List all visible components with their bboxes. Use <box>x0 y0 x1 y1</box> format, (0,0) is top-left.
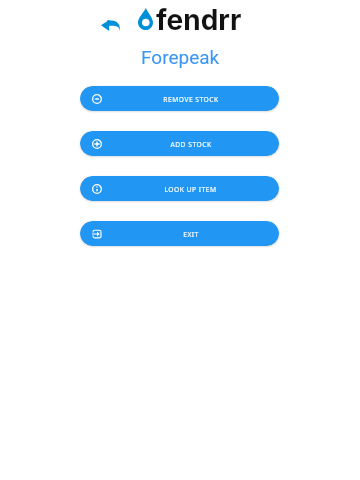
button[interactable]: ADD STOCK <box>80 131 279 156</box>
button[interactable]: EXIT <box>80 221 279 246</box>
staticText: Forepeak <box>141 46 220 68</box>
button[interactable]: Back <box>96 16 124 35</box>
staticText: EXIT <box>183 230 199 239</box>
staticText: fendrr <box>156 3 242 37</box>
staticText: LOOK UP ITEM <box>164 185 217 194</box>
staticText: ADD STOCK <box>170 140 212 149</box>
button[interactable]: REMOVE STOCK <box>80 86 279 111</box>
button[interactable]: LOOK UP ITEM <box>80 176 279 201</box>
staticText: REMOVE STOCK <box>163 95 219 104</box>
